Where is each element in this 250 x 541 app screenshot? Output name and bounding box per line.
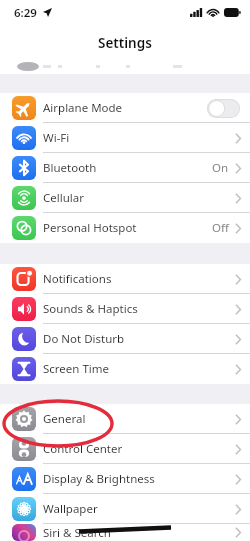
button[interactable]: Siri & Search bbox=[0, 524, 250, 541]
button[interactable]: Airplane Mode bbox=[0, 93, 250, 123]
button[interactable]: Notifications bbox=[0, 264, 250, 294]
staticText: Notifications bbox=[43, 271, 112, 287]
button[interactable]: Bluetooth bbox=[0, 153, 250, 183]
button[interactable]: Personal Hotspot bbox=[0, 213, 250, 243]
staticText: Control Center bbox=[43, 441, 123, 457]
staticText: Cellular bbox=[43, 190, 84, 206]
staticText: Bluetooth bbox=[43, 160, 97, 176]
staticText: Wallpaper bbox=[43, 501, 98, 517]
button[interactable]: Display & Brightness bbox=[0, 464, 250, 494]
staticText: Siri & Search bbox=[43, 525, 111, 541]
staticText: Personal Hotspot bbox=[43, 220, 137, 236]
button[interactable]: Wi-Fi bbox=[0, 123, 250, 153]
staticText: Off bbox=[212, 220, 229, 236]
staticText: Sounds & Haptics bbox=[43, 301, 138, 317]
staticText: General bbox=[43, 411, 86, 427]
staticText: Do Not Disturb bbox=[43, 331, 125, 347]
button[interactable]: Screen Time bbox=[0, 354, 250, 384]
staticText: Airplane Mode bbox=[43, 100, 123, 116]
staticText: Display & Brightness bbox=[43, 471, 155, 487]
button[interactable]: Sounds & Haptics bbox=[0, 294, 250, 324]
staticText: Wi-Fi bbox=[43, 130, 70, 146]
other: Airplane Mode toggle bbox=[207, 99, 240, 118]
staticText: Screen Time bbox=[43, 361, 110, 377]
button[interactable]: General bbox=[0, 404, 250, 434]
button[interactable]: Wallpaper bbox=[0, 494, 250, 524]
button[interactable]: Control Center bbox=[0, 434, 250, 464]
staticText: Settings bbox=[98, 34, 152, 52]
button[interactable]: Cellular bbox=[0, 183, 250, 213]
staticText: 6:29 bbox=[14, 5, 37, 21]
button[interactable]: Do Not Disturb bbox=[0, 324, 250, 354]
staticText: On bbox=[212, 160, 229, 176]
